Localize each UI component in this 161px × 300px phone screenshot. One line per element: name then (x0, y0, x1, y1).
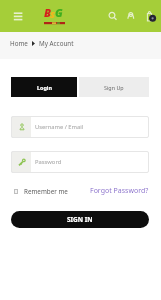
staticText: Remember me (24, 187, 68, 196)
button[interactable]: Remember me (11, 187, 68, 196)
button[interactable]: Login (11, 77, 77, 97)
button[interactable]: Password (11, 151, 149, 173)
button[interactable]: Cart (144, 8, 158, 22)
staticText: Home (10, 39, 28, 48)
staticText: B (44, 5, 51, 20)
button[interactable]: Sign Up (79, 77, 149, 97)
staticText: Username / Email (35, 123, 84, 131)
staticText: Login (37, 84, 52, 91)
staticText: S (50, 8, 55, 20)
staticText: SIGN IN (67, 215, 93, 224)
staticText: Password (35, 158, 62, 166)
button[interactable]: Search (105, 8, 120, 23)
button[interactable]: SIGN IN (11, 211, 149, 228)
button[interactable]: Username / Email (11, 116, 149, 138)
staticText: My Account (39, 39, 74, 48)
button[interactable]: Account (124, 8, 138, 22)
staticText: Sign Up (104, 84, 124, 91)
staticText: G (55, 5, 63, 20)
button[interactable]: Forgot Password? (90, 186, 149, 196)
button[interactable]: Menu (10, 8, 26, 24)
